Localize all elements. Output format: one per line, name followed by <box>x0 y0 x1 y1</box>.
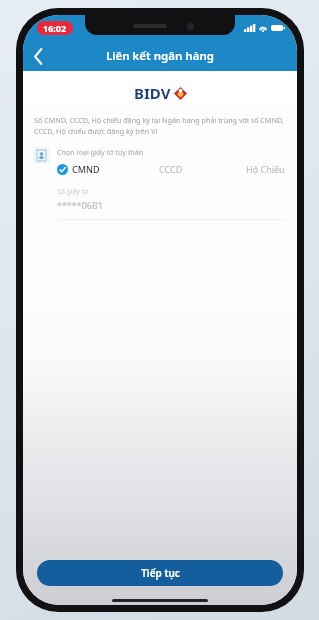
staticText: Số CMND, CCCD, Hộ chiếu đăng ký tại Ngân… <box>34 115 286 136</box>
staticText: CMND <box>72 163 100 175</box>
button[interactable]: Tiếp tục <box>37 560 283 586</box>
staticText: Chọn loại giấy tờ tùy thân <box>57 147 144 157</box>
staticText: Hộ Chiếu <box>246 163 285 175</box>
button[interactable]: Back <box>23 41 53 71</box>
button[interactable]: CCCD <box>133 163 209 175</box>
staticText: *****06B1 <box>57 199 103 211</box>
staticText: Liên kết ngân hàng <box>106 48 214 64</box>
staticText: Số giấy tờ <box>57 187 89 196</box>
staticText: BIDV <box>134 83 171 103</box>
staticText: Tiếp tục <box>141 566 180 580</box>
staticText: CCCD <box>159 163 183 175</box>
staticText: 16:02 <box>43 22 67 34</box>
button[interactable]: Hộ Chiếu <box>209 163 285 175</box>
button[interactable]: CMND <box>57 163 133 175</box>
